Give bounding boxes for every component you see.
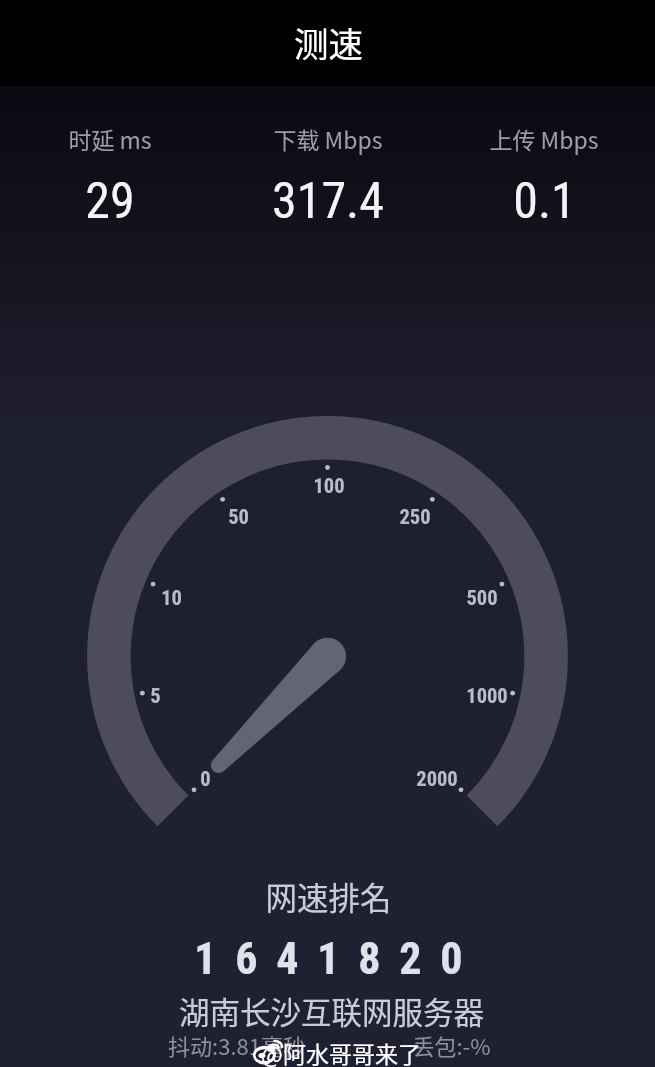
staticText: 6 bbox=[235, 933, 258, 985]
staticText: 丢包:-% bbox=[412, 1029, 491, 1061]
staticText: @阿水哥哥来了 bbox=[261, 1036, 421, 1067]
staticText: 湖南长沙互联网服务器 bbox=[179, 989, 484, 1033]
staticText: 2 bbox=[399, 933, 422, 985]
staticText: 上传 Mbps bbox=[489, 122, 599, 155]
staticText: 29 bbox=[85, 172, 135, 231]
staticText: 100 bbox=[313, 474, 345, 498]
staticText: 1 bbox=[194, 933, 217, 985]
staticText: 250 bbox=[399, 505, 431, 529]
button[interactable]: 时延 ms bbox=[0, 100, 220, 230]
staticText: 317.4 bbox=[272, 172, 384, 231]
staticText: 8 bbox=[358, 933, 381, 985]
staticText: 1 bbox=[317, 933, 340, 985]
staticText: 网速排名 bbox=[265, 873, 392, 919]
staticText: 1000 bbox=[466, 684, 508, 708]
staticText: 下载 Mbps bbox=[273, 122, 383, 155]
staticText: 0 bbox=[200, 767, 211, 791]
staticText: 测速 bbox=[294, 17, 363, 67]
button[interactable]: 上传 Mbps bbox=[434, 100, 654, 230]
button[interactable]: 下载 Mbps bbox=[218, 100, 438, 230]
staticText: 抖动:3.81毫秒 bbox=[168, 1029, 305, 1061]
staticText: 50 bbox=[228, 505, 249, 529]
staticText: 2000 bbox=[416, 767, 458, 791]
staticText: 0.1 bbox=[513, 172, 576, 231]
staticText: 0 bbox=[440, 933, 463, 985]
staticText: 500 bbox=[466, 586, 498, 610]
button[interactable]: 测速 bbox=[0, 0, 655, 86]
staticText: 10 bbox=[161, 586, 182, 610]
staticText: 4 bbox=[276, 933, 299, 985]
staticText: 时延 ms bbox=[68, 122, 152, 155]
staticText: 5 bbox=[150, 684, 161, 708]
